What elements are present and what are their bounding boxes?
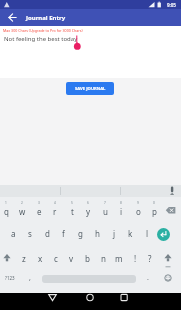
staticText: t xyxy=(71,206,74,217)
staticText: s xyxy=(28,228,32,239)
button[interactable]: v xyxy=(63,249,79,267)
button[interactable]: z xyxy=(16,249,32,267)
button[interactable] xyxy=(160,249,175,266)
button[interactable]: i xyxy=(113,202,129,220)
staticText: 7 xyxy=(104,201,106,205)
button[interactable]: e xyxy=(31,202,47,220)
staticText: g xyxy=(78,228,83,239)
button[interactable]: l xyxy=(139,224,155,242)
button[interactable]: q xyxy=(0,202,14,220)
staticText: z xyxy=(22,253,26,264)
staticText: Journal Entry xyxy=(26,14,66,22)
button[interactable]: o xyxy=(130,202,146,220)
staticText: l xyxy=(146,228,149,239)
staticText: x xyxy=(38,253,43,264)
button[interactable]: ?123 xyxy=(2,269,18,287)
button[interactable]: w xyxy=(14,202,30,220)
button[interactable] xyxy=(157,228,170,241)
button[interactable]: c xyxy=(48,249,64,267)
button[interactable] xyxy=(0,249,15,266)
button[interactable]: ! xyxy=(127,249,143,267)
staticText: r xyxy=(53,206,57,217)
button[interactable]: m xyxy=(111,249,127,267)
button[interactable] xyxy=(5,11,19,24)
button[interactable] xyxy=(44,290,60,310)
staticText: Max 300 Chars (Upgrade to Pro for 3000 C… xyxy=(3,28,83,33)
staticText: b xyxy=(85,253,90,264)
staticText: Not feeling the best today xyxy=(4,35,78,43)
button[interactable]: . xyxy=(140,269,156,287)
staticText: j xyxy=(113,228,116,239)
staticText: n xyxy=(101,253,106,264)
button[interactable]: s xyxy=(22,224,38,242)
staticText: ! xyxy=(134,253,137,264)
staticText: 8 xyxy=(120,201,122,205)
button[interactable]: n xyxy=(95,249,111,267)
staticText: d xyxy=(45,228,50,239)
staticText: w xyxy=(19,206,26,217)
button[interactable]: a xyxy=(5,224,21,242)
button[interactable] xyxy=(160,270,176,286)
staticText: f xyxy=(62,228,65,239)
button[interactable]: j xyxy=(106,224,122,242)
staticText: q xyxy=(4,206,9,217)
button[interactable]: p xyxy=(146,202,162,220)
button[interactable]: r xyxy=(47,202,63,220)
staticText: 4 xyxy=(54,201,56,205)
staticText: p xyxy=(152,206,157,217)
button[interactable]: , xyxy=(22,269,38,287)
staticText: 2 xyxy=(21,201,23,205)
button[interactable]: h xyxy=(89,224,105,242)
staticText: SAVE JOURNAL xyxy=(75,86,106,92)
button[interactable]: SAVE JOURNAL xyxy=(66,82,114,95)
staticText: e xyxy=(37,206,42,217)
button[interactable]: y xyxy=(80,202,96,220)
staticText: 1 xyxy=(5,201,7,205)
button[interactable]: d xyxy=(39,224,55,242)
button[interactable]: x xyxy=(32,249,48,267)
staticText: 6 xyxy=(87,201,89,205)
staticText: 0 xyxy=(153,201,155,205)
staticText: v xyxy=(69,253,74,264)
staticText: y xyxy=(86,206,91,217)
staticText: i xyxy=(120,206,123,217)
button[interactable]: b xyxy=(79,249,95,267)
staticText: . xyxy=(147,273,149,283)
staticText: k xyxy=(128,228,133,239)
staticText: 9 xyxy=(137,201,139,205)
staticText: a xyxy=(11,228,16,239)
staticText: o xyxy=(136,206,141,217)
staticText: m xyxy=(115,253,123,264)
button[interactable]: k xyxy=(122,224,138,242)
staticText: u xyxy=(103,206,108,217)
button[interactable]: ? xyxy=(142,249,158,267)
staticText: ? xyxy=(148,253,152,264)
staticText: 5 xyxy=(71,201,73,205)
staticText: ?123 xyxy=(5,275,15,281)
button[interactable] xyxy=(162,202,179,219)
staticText: 9:05 xyxy=(167,2,176,8)
button[interactable]: g xyxy=(72,224,88,242)
staticText: 3 xyxy=(38,201,40,205)
button[interactable] xyxy=(116,290,132,310)
staticText: c xyxy=(54,253,58,264)
staticText: , xyxy=(29,273,31,283)
button[interactable]: t xyxy=(64,202,80,220)
button[interactable]: u xyxy=(97,202,113,220)
button[interactable]: f xyxy=(55,224,71,242)
staticText: h xyxy=(95,228,100,239)
button[interactable] xyxy=(82,290,98,310)
